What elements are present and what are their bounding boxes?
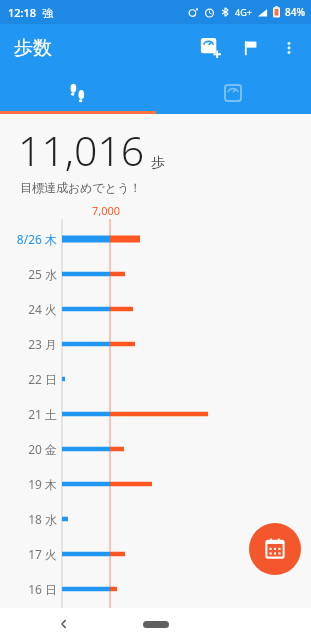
button[interactable]: Home: [143, 621, 169, 628]
button[interactable]: 19 木: [0, 464, 311, 499]
button[interactable]: Steps tab: [0, 72, 155, 114]
staticText: 16 日: [0, 581, 57, 597]
staticText: 目標達成おめでとう！: [20, 180, 142, 195]
staticText: 18 水: [0, 511, 57, 527]
staticText: 12:18 強: [8, 5, 53, 20]
staticText: 25 水: [0, 266, 57, 282]
button[interactable]: 18 水: [0, 499, 311, 534]
staticText: 8/26 木: [0, 231, 57, 247]
staticText: 歩: [151, 154, 165, 172]
staticText: 17 火: [0, 546, 57, 562]
button[interactable]: Goal: [231, 28, 271, 68]
button[interactable]: 20 金: [0, 429, 311, 464]
button[interactable]: 23 月: [0, 324, 311, 359]
staticText: 7,000: [92, 203, 121, 218]
staticText: 23 月: [0, 336, 57, 352]
staticText: 20 金: [0, 441, 57, 457]
button[interactable]: 21 土: [0, 394, 311, 429]
staticText: 19 木: [0, 476, 57, 492]
staticText: 歩数: [14, 36, 52, 60]
staticText: 11,016: [18, 122, 145, 178]
staticText: 84%: [285, 5, 305, 19]
button[interactable]: Calendar: [249, 523, 301, 575]
button[interactable]: 17 火: [0, 534, 311, 569]
staticText: 24 火: [0, 301, 57, 317]
button[interactable]: 24 火: [0, 289, 311, 324]
button[interactable]: Back: [48, 608, 80, 640]
button[interactable]: 25 水: [0, 254, 311, 289]
staticText: 4G+: [235, 6, 252, 18]
button[interactable]: 8/26 木: [0, 219, 311, 254]
button[interactable]: More options: [271, 30, 307, 66]
staticText: 21 土: [0, 406, 57, 422]
button[interactable]: Add weight: [191, 28, 231, 68]
button[interactable]: 22 日: [0, 359, 311, 394]
button[interactable]: 16 日: [0, 569, 311, 604]
button[interactable]: Weight tab: [155, 72, 311, 114]
staticText: 22 日: [0, 371, 57, 387]
